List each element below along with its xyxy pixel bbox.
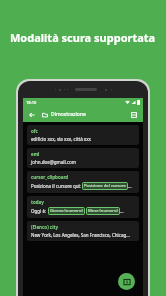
staticText: Mese (numero) [88, 208, 118, 214]
button[interactable]: Nuovo elemento [118, 273, 135, 290]
button[interactable]: ofс [27, 125, 139, 145]
staticText: Oggi è: [31, 208, 48, 214]
staticText: Dimostrazione [51, 111, 86, 118]
button[interactable]: eml [27, 148, 139, 168]
button[interactable]: Indietro [27, 110, 37, 120]
staticText: edificio xxx, via xxx, città xxx [31, 136, 91, 142]
button[interactable]: Cambia tema [129, 110, 139, 120]
staticText: (Elenco) city [31, 224, 59, 230]
staticText: john.doe@gmail.com [31, 159, 76, 165]
button[interactable]: cursor_clipboard [27, 171, 139, 193]
staticText: … [120, 208, 124, 214]
staticText: New York, Los Angeles, San Francisco, Ch… [31, 232, 130, 238]
staticText: … [128, 183, 132, 189]
staticText: Posiziona il cursore qui: [31, 183, 82, 189]
button[interactable]: (Elenco) city [27, 221, 139, 241]
staticText: 18:10 [26, 100, 37, 105]
staticText: Modalità scura supportata [10, 30, 156, 45]
button[interactable]: today [27, 196, 139, 218]
staticText: eml [31, 151, 40, 157]
staticText: cursor_clipboard [31, 174, 69, 180]
staticText: ofс [31, 128, 38, 134]
staticText: today [31, 199, 44, 205]
staticText: Giorno (numero) [50, 208, 83, 214]
staticText: Posizione del cursore [84, 183, 126, 189]
